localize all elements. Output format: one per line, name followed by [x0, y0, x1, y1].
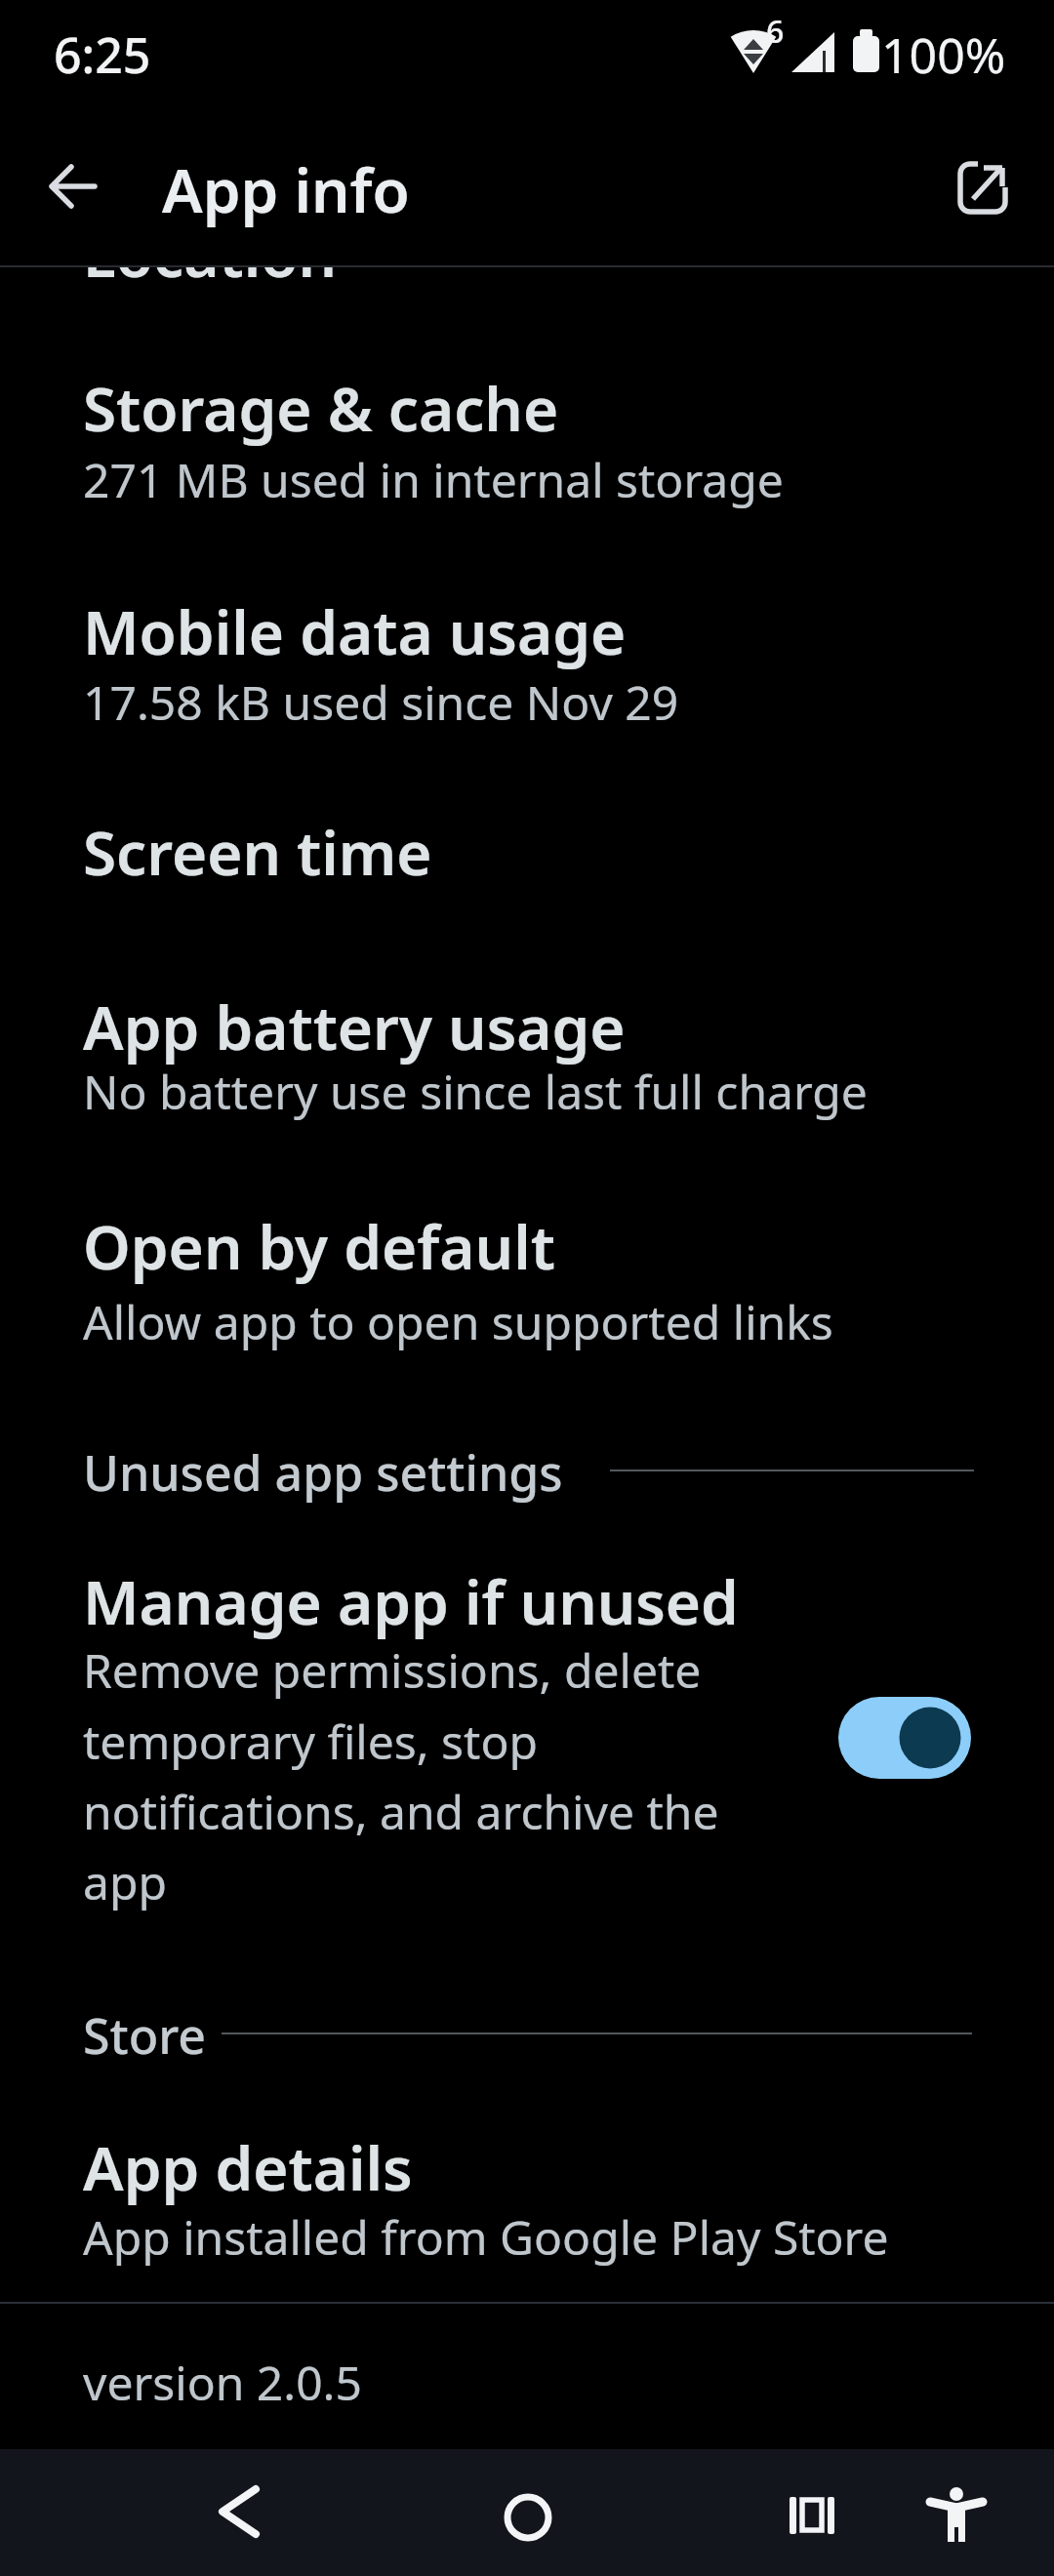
- staticText: Open by default: [83, 1205, 555, 1287]
- staticText: Storage & cache: [83, 367, 559, 449]
- button[interactable]: [0, 976, 1054, 1171]
- staticText: Remove permissions, delete temporary fil…: [83, 1638, 719, 1913]
- staticText: Allow app to open supported links: [83, 1290, 833, 1353]
- button[interactable]: [484, 2474, 572, 2561]
- staticText: version 2.0.5: [83, 2351, 362, 2414]
- button[interactable]: [912, 2474, 1000, 2561]
- button[interactable]: [0, 1551, 1054, 1922]
- staticText: App installed from Google Play Store: [83, 2205, 889, 2269]
- staticText: Location: [83, 213, 338, 295]
- staticText: 100%: [881, 21, 1006, 88]
- staticText: 6:25: [54, 21, 151, 88]
- staticText: Mobile data usage: [83, 590, 627, 672]
- button[interactable]: [0, 1200, 1054, 1395]
- button[interactable]: [0, 351, 1054, 556]
- button[interactable]: [0, 800, 1054, 927]
- staticText: Manage app if unused: [83, 1560, 739, 1642]
- staticText: No battery use since last full charge: [83, 1060, 868, 1123]
- staticText: App battery usage: [83, 986, 626, 1067]
- staticText: 17.58 kB used since Nov 29: [83, 670, 679, 734]
- staticText: Store: [83, 2002, 207, 2069]
- button[interactable]: [766, 2474, 854, 2561]
- button[interactable]: [34, 147, 112, 225]
- staticText: 271 MB used in internal storage: [83, 448, 784, 511]
- staticText: 6: [766, 10, 785, 53]
- button[interactable]: [838, 1697, 971, 1779]
- button[interactable]: [0, 2117, 1054, 2293]
- button[interactable]: [951, 148, 1015, 222]
- button[interactable]: [0, 576, 1054, 781]
- staticText: Unused app settings: [83, 1439, 563, 1506]
- button[interactable]: [195, 2469, 283, 2556]
- staticText: App info: [162, 148, 410, 230]
- staticText: Screen time: [83, 811, 432, 893]
- staticText: App details: [83, 2126, 413, 2208]
